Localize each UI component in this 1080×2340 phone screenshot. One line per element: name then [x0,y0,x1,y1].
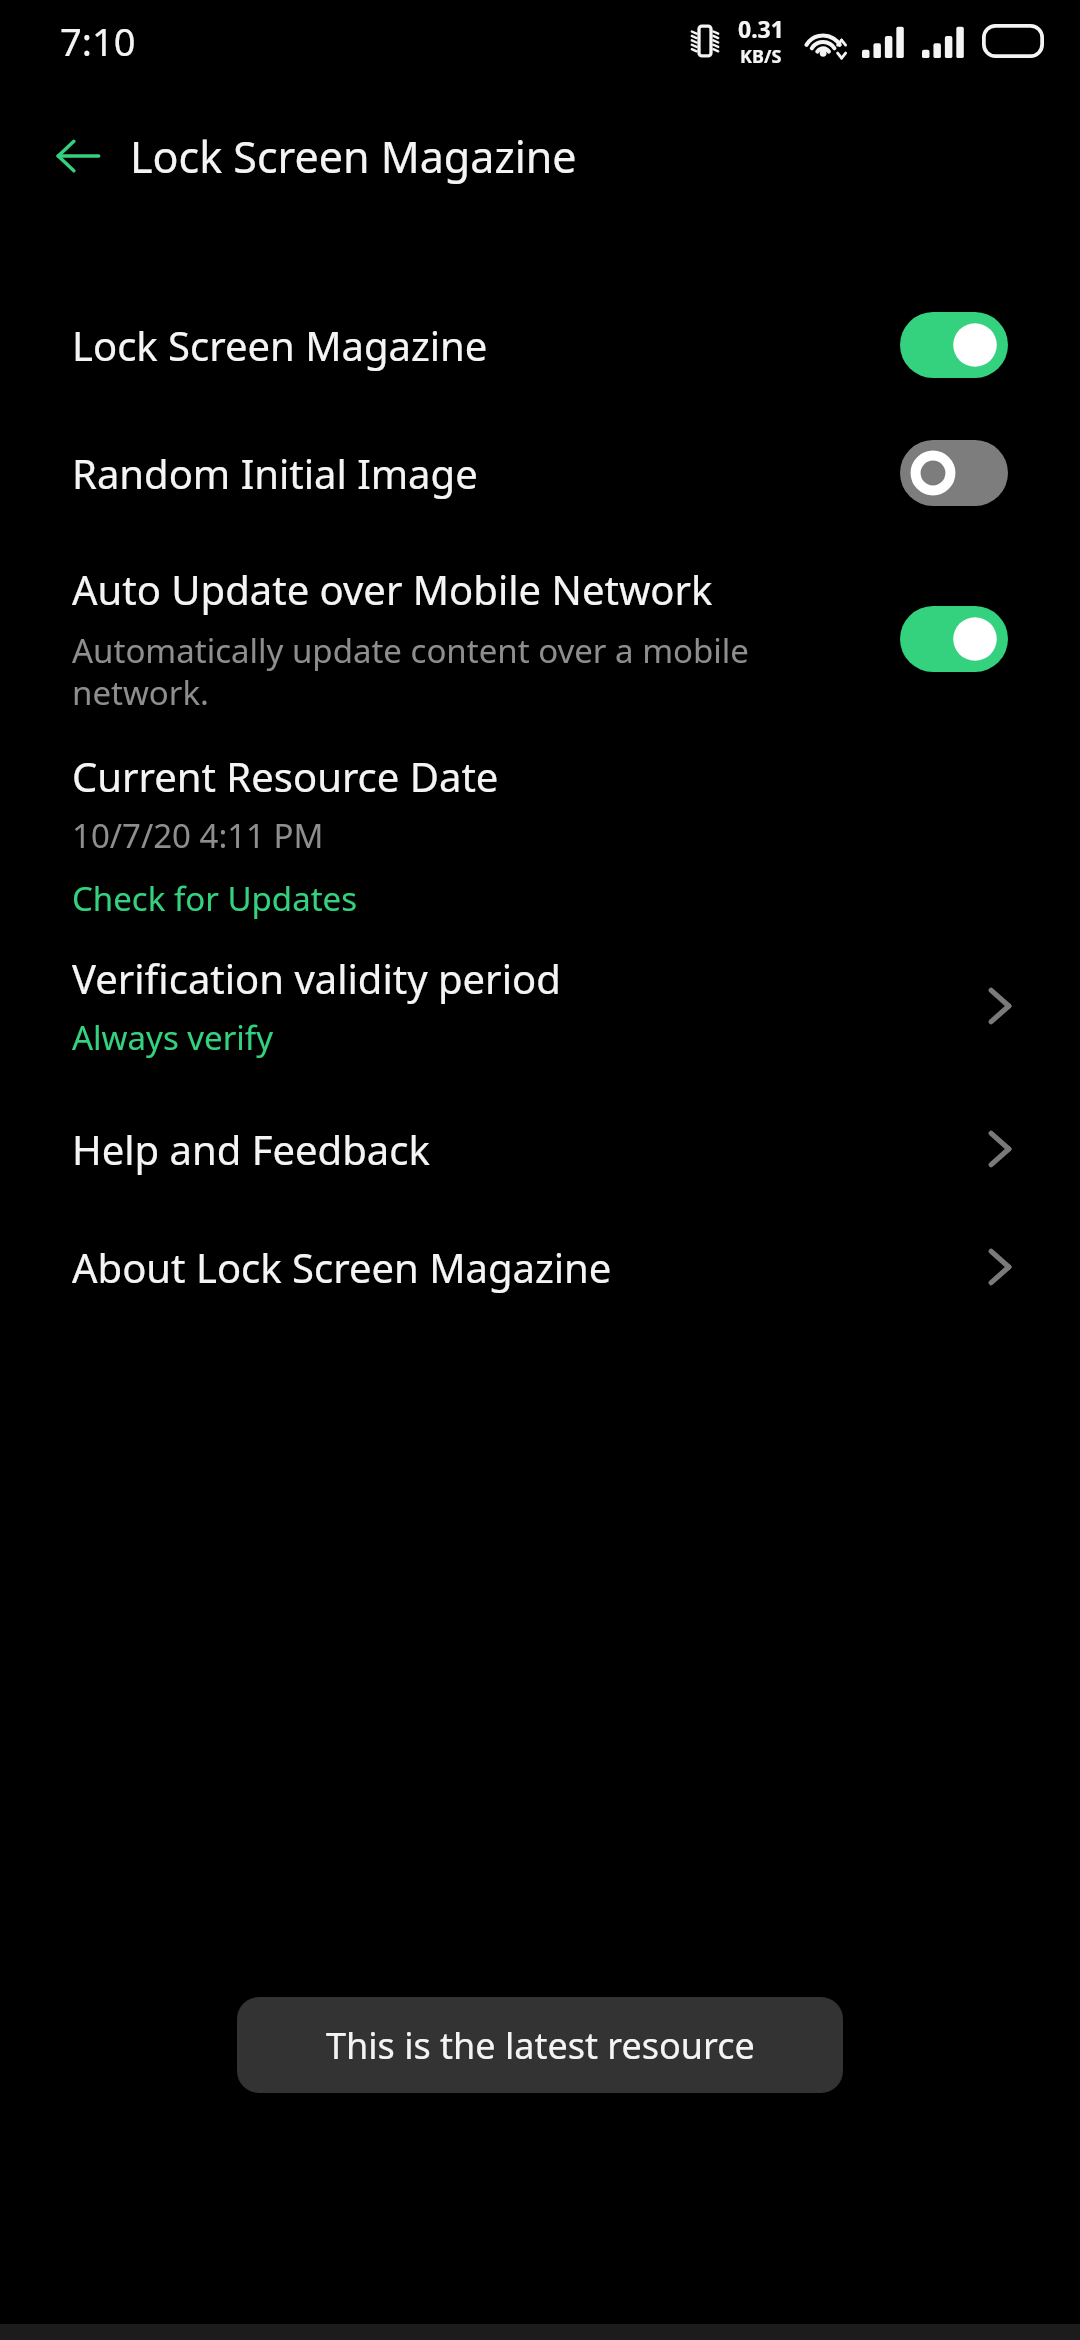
staticText: KB/S [740,44,782,69]
staticText: 10/7/20 4:11 PM [72,813,324,858]
button[interactable]: Auto Update over Mobile Network [0,562,1080,715]
staticText: Verification validity period [72,951,561,1005]
staticText: Current Resource Date [72,749,499,803]
staticText: Automatically update content over a mobi… [72,628,749,715]
button[interactable]: Lock Screen Magazine [0,312,1080,378]
button[interactable]: Check for Updates [0,876,1080,921]
staticText: About Lock Screen Magazine [72,1240,612,1294]
staticText: Lock Screen Magazine [130,127,577,186]
button[interactable]: On [900,606,1008,672]
staticText: 0.31 [738,13,784,44]
staticText: Check for Updates [72,876,357,921]
staticText: 7:10 [60,15,136,67]
button[interactable]: Help and Feedback [0,1122,1080,1176]
button[interactable]: This is the latest resource [237,1997,843,2093]
button[interactable]: Off [900,440,1008,506]
staticText: This is the latest resource [326,2021,755,2070]
staticText: Lock Screen Magazine [72,318,488,372]
staticText: Auto Update over Mobile Network [72,562,713,616]
staticText: Random Initial Image [72,446,478,500]
staticText: Always verify [72,1015,273,1060]
staticText: Help and Feedback [72,1122,430,1176]
button[interactable]: Current Resource Date [0,749,1080,858]
button[interactable]: Verification validity period [0,951,1080,1060]
button[interactable]: Random Initial Image [0,440,1080,506]
button[interactable]: About Lock Screen Magazine [0,1240,1080,1294]
button[interactable]: On [900,312,1008,378]
button[interactable]: Back [48,126,108,186]
